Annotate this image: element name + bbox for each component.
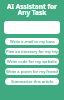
staticText: Write e-mail to my boss bbox=[10, 39, 55, 44]
staticText: Write a poem for my friend bbox=[6, 69, 58, 74]
button[interactable]: Write code for my website bbox=[5, 58, 59, 65]
button[interactable]: Plan an itinerary for my trip bbox=[5, 48, 59, 55]
staticText: AI Assistant for Any Task bbox=[0, 2, 64, 17]
button[interactable]: Write a poem for my friend bbox=[5, 68, 59, 75]
button[interactable]: Write e-mail to my boss bbox=[5, 38, 59, 45]
staticText: Write code for my website bbox=[7, 59, 57, 64]
staticText: Summarize this article bbox=[11, 79, 54, 84]
button[interactable]: Summarize this article bbox=[5, 78, 59, 85]
staticText: Plan an itinerary for my trip bbox=[6, 49, 59, 54]
